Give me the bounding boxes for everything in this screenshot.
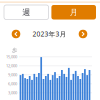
staticText: 12,000 [6,63,17,68]
staticText: 週 [22,7,30,17]
staticText: 3,000 [8,90,17,95]
button[interactable]: 週 [4,5,49,19]
button[interactable]: Previous month [11,29,21,39]
staticText: 15,000 [6,54,17,59]
button[interactable]: Next month [78,29,88,39]
staticText: 歩 [12,47,17,54]
staticText: 2023年3月 [32,30,66,38]
staticText: 9,000 [8,72,17,77]
staticText: 月 [70,7,78,17]
button[interactable]: 月 [51,5,96,19]
staticText: 6,000 [8,81,17,86]
